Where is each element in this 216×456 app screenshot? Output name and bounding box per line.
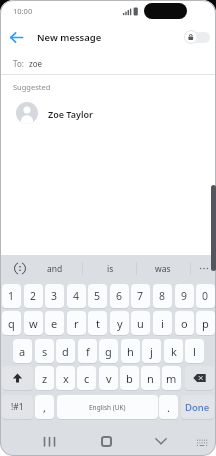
staticText: v xyxy=(106,371,112,386)
staticText: k xyxy=(171,344,177,359)
button[interactable]: m xyxy=(162,366,181,390)
button[interactable]: a xyxy=(13,339,32,363)
button[interactable]: 3 xyxy=(45,284,64,308)
button[interactable]: g xyxy=(99,339,118,363)
staticText: f xyxy=(86,344,90,359)
staticText: o xyxy=(181,316,188,331)
button[interactable]: , xyxy=(35,395,54,419)
staticText: l xyxy=(193,344,196,359)
button[interactable] xyxy=(2,366,33,390)
staticText: n xyxy=(147,371,154,386)
button[interactable]: 8 xyxy=(153,284,172,308)
staticText: b xyxy=(126,371,133,386)
staticText: w xyxy=(29,316,38,331)
staticText: 10:00 xyxy=(13,6,33,16)
staticText: j xyxy=(150,344,153,359)
staticText: m xyxy=(166,371,177,386)
button[interactable]: c xyxy=(77,366,96,390)
button[interactable]: y xyxy=(110,311,129,335)
staticText: d xyxy=(62,344,69,359)
staticText: c xyxy=(84,371,90,386)
button[interactable] xyxy=(3,28,29,46)
staticText: !#1 xyxy=(11,401,24,413)
staticText: and xyxy=(47,263,63,275)
button[interactable]: 1 xyxy=(2,284,21,308)
button[interactable]: 2 xyxy=(24,284,43,308)
button[interactable] xyxy=(101,436,112,447)
staticText: u xyxy=(137,316,144,331)
button[interactable]: j xyxy=(142,339,161,363)
staticText: 6 xyxy=(116,289,123,303)
button[interactable]: h xyxy=(121,339,140,363)
staticText: t xyxy=(96,316,100,331)
button[interactable]: l xyxy=(185,339,204,363)
staticText: 4 xyxy=(73,289,80,303)
button[interactable]: b xyxy=(120,366,139,390)
staticText: r xyxy=(74,316,79,331)
button[interactable]: !#1 xyxy=(2,395,33,419)
staticText: Zoe Taylor xyxy=(48,108,93,120)
button[interactable] xyxy=(185,366,214,390)
staticText: English (UK) xyxy=(89,403,126,412)
staticText: , xyxy=(43,400,46,415)
button[interactable] xyxy=(196,439,208,448)
staticText: y xyxy=(117,316,123,331)
staticText: s xyxy=(42,344,48,359)
button[interactable]: 9 xyxy=(175,284,194,308)
button[interactable]: 5 xyxy=(88,284,107,308)
staticText: 7 xyxy=(137,289,144,303)
button[interactable]: k xyxy=(164,339,183,363)
staticText: q xyxy=(8,316,15,331)
staticText: h xyxy=(127,344,134,359)
staticText: a xyxy=(19,344,26,359)
staticText: 9 xyxy=(181,289,188,303)
staticText: p xyxy=(202,316,209,331)
staticText: i xyxy=(161,316,164,331)
staticText: 3 xyxy=(51,289,58,303)
button[interactable]: u xyxy=(131,311,150,335)
button[interactable]: 6 xyxy=(110,284,129,308)
staticText: is xyxy=(107,263,114,275)
button[interactable]: i xyxy=(153,311,172,335)
button[interactable]: e xyxy=(45,311,64,335)
staticText: zoe xyxy=(29,58,43,69)
button[interactable]: Zoe Taylor xyxy=(0,97,216,130)
button[interactable]: was xyxy=(143,258,183,279)
button[interactable]: t xyxy=(88,311,107,335)
button[interactable]: is xyxy=(90,258,130,279)
staticText: g xyxy=(105,344,112,359)
staticText: To: xyxy=(13,58,24,69)
button[interactable]: v xyxy=(99,366,118,390)
button[interactable] xyxy=(43,436,57,448)
staticText: 0 xyxy=(202,289,209,303)
button[interactable]: s xyxy=(35,339,54,363)
button[interactable]: Done xyxy=(181,395,214,419)
button[interactable] xyxy=(199,267,211,270)
button[interactable]: q xyxy=(2,311,21,335)
button[interactable]: x xyxy=(56,366,75,390)
button[interactable]: 4 xyxy=(67,284,86,308)
button[interactable]: z xyxy=(35,366,54,390)
button[interactable]: f xyxy=(78,339,97,363)
button[interactable]: and xyxy=(35,258,75,279)
button[interactable] xyxy=(184,28,211,45)
staticText: Done xyxy=(185,401,210,414)
button[interactable] xyxy=(155,438,167,445)
button[interactable]: 7 xyxy=(131,284,150,308)
button[interactable]: 0 xyxy=(196,284,215,308)
button[interactable]: d xyxy=(56,339,75,363)
button[interactable]: o xyxy=(175,311,194,335)
button[interactable]: r xyxy=(67,311,86,335)
button[interactable]: p xyxy=(196,311,215,335)
staticText: x xyxy=(63,371,69,386)
staticText: was xyxy=(155,263,171,275)
button[interactable]: . xyxy=(159,395,178,419)
staticText: . xyxy=(167,400,170,415)
staticText: z xyxy=(42,371,48,386)
button[interactable]: w xyxy=(24,311,43,335)
staticText: 2 xyxy=(30,289,37,303)
button[interactable]: English (UK) xyxy=(57,395,158,419)
staticText: 8 xyxy=(159,289,166,303)
button[interactable] xyxy=(14,262,26,275)
button[interactable]: n xyxy=(141,366,160,390)
